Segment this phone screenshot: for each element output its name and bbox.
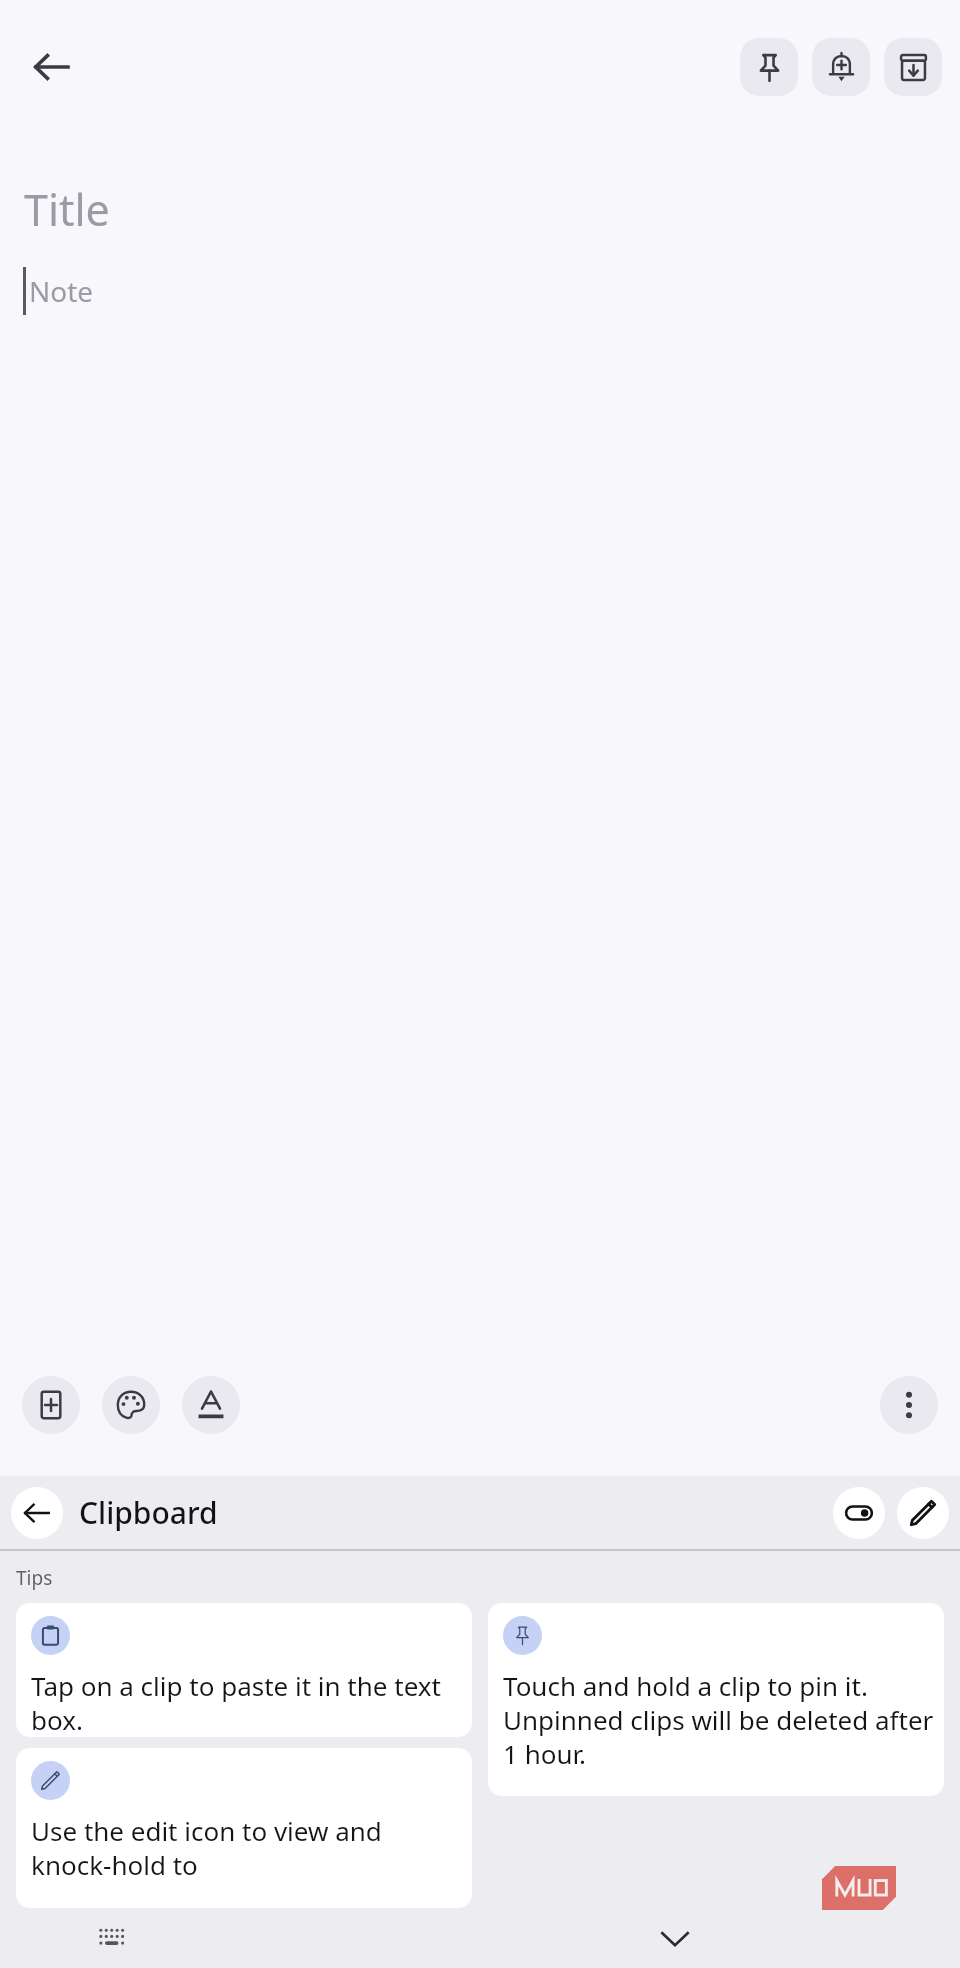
button[interactable]: Archive — [884, 38, 942, 96]
button[interactable]: Toggle clipboard — [833, 1487, 885, 1539]
staticText: Clipboard — [79, 1492, 218, 1533]
staticText: Title — [24, 180, 110, 239]
staticText: Tap on a clip to paste it in the text bo… — [31, 1668, 462, 1737]
button[interactable]: Pin note — [740, 38, 798, 96]
staticText: Note — [29, 272, 94, 310]
button[interactable]: Text formatting — [182, 1376, 240, 1434]
button[interactable]: Change colour — [102, 1376, 160, 1434]
button[interactable]: Back — [18, 33, 86, 101]
button[interactable]: Touch and hold a clip to pin it. Unpinne… — [488, 1603, 944, 1796]
button[interactable]: Back — [11, 1487, 63, 1539]
staticText: Tips — [16, 1565, 53, 1591]
button[interactable]: Add attachment — [22, 1376, 80, 1434]
button[interactable]: Add reminder — [812, 38, 870, 96]
button[interactable]: More options — [880, 1376, 938, 1434]
button[interactable]: Use the edit icon to view and knock-hold… — [16, 1748, 472, 1908]
button[interactable]: Collapse — [650, 1913, 700, 1963]
staticText: Use the edit icon to view and knock-hold… — [31, 1813, 462, 1882]
staticText: Touch and hold a clip to pin it. Unpinne… — [503, 1668, 934, 1771]
button[interactable]: Keyboard — [90, 1915, 136, 1961]
button[interactable]: Tap on a clip to paste it in the text bo… — [16, 1603, 472, 1737]
button[interactable]: Edit clips — [897, 1487, 949, 1539]
